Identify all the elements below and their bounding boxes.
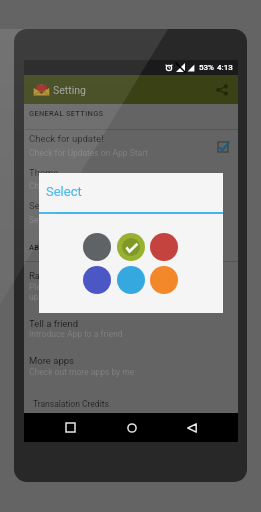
- button[interactable]: Home: [117, 413, 146, 442]
- staticText: More apps: [29, 355, 74, 366]
- staticText: updating: [29, 292, 63, 302]
- button[interactable]: Colour option: [147, 263, 181, 297]
- button[interactable]: Colour option: [114, 263, 148, 297]
- button[interactable]: Colour option: [80, 263, 114, 297]
- staticText: ABOUT: [29, 243, 55, 252]
- staticText: Send Feedback to Developer: [29, 215, 137, 225]
- staticText: 4:13: [217, 63, 233, 72]
- button[interactable]: Send Feedback: [24, 196, 238, 229]
- button[interactable]: Back: [177, 413, 206, 442]
- staticText: Change the Theme of App: [29, 181, 128, 191]
- button[interactable]: Tell a friend: [24, 312, 238, 349]
- button[interactable]: More apps: [24, 349, 238, 387]
- button[interactable]: Theme: [24, 163, 238, 196]
- staticText: Transalation Credits: [33, 399, 109, 409]
- staticText: Introduce App to a friend: [29, 329, 123, 339]
- button[interactable]: Share: [211, 79, 233, 101]
- button[interactable]: Rate this app: [24, 262, 238, 312]
- button[interactable]: Check for update!: [24, 130, 238, 163]
- button[interactable]: Transalation Credits: [24, 390, 238, 410]
- staticText: Setting: [53, 84, 86, 96]
- staticText: Please rate the app, it helps to keep: [29, 282, 163, 292]
- staticText: 53%: [199, 63, 214, 72]
- staticText: Tell a friend: [29, 318, 79, 329]
- staticText: Check for Updates on App Start: [29, 148, 149, 158]
- staticText: GENERAL SETTINGS: [29, 109, 104, 118]
- button[interactable]: Colour option: [147, 230, 181, 264]
- staticText: Theme: [29, 167, 59, 178]
- staticText: Rate this app: [29, 270, 85, 281]
- staticText: Check out more apps by me: [29, 367, 135, 377]
- staticText: Check for update!: [29, 133, 104, 144]
- staticText: Send Feedback: [29, 200, 94, 211]
- button[interactable]: Colour option: [114, 230, 148, 264]
- button[interactable]: Recent apps: [56, 413, 85, 442]
- button[interactable]: Colour option: [80, 230, 114, 264]
- staticText: Select: [46, 184, 82, 199]
